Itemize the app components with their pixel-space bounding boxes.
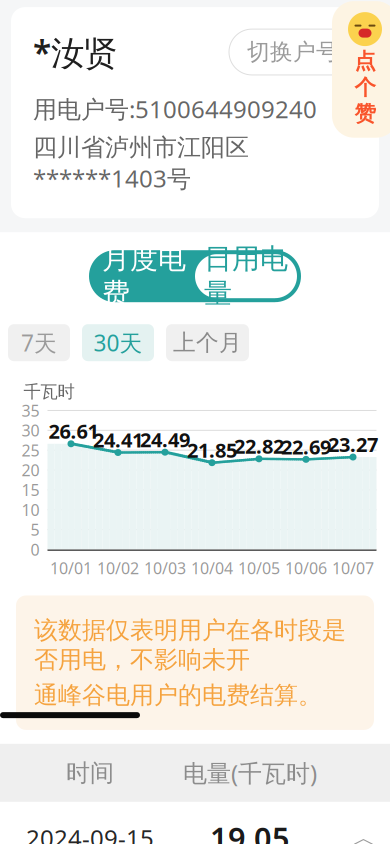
- staticText: 30: [21, 420, 39, 441]
- staticText: 切换户号: [247, 38, 339, 66]
- staticText: 10/03: [144, 557, 186, 579]
- staticText: 月度电费: [102, 242, 186, 311]
- staticText: 24.49: [140, 426, 190, 453]
- staticText: 26.61: [48, 418, 98, 444]
- staticText: 7天: [21, 328, 57, 358]
- staticText: 23.27: [328, 431, 378, 458]
- staticText: 21.85: [187, 437, 237, 463]
- staticText: *汝贤: [33, 30, 117, 74]
- staticText: 10/05: [238, 557, 280, 579]
- button[interactable]: 2024-09-15: [0, 802, 390, 844]
- staticText: 30天: [93, 328, 142, 358]
- button[interactable]: 上个月: [166, 324, 249, 361]
- staticText: 0: [30, 539, 39, 560]
- button[interactable]: 点个赞: [332, 1, 390, 138]
- staticText: 用电户号:5100644909240: [33, 93, 317, 125]
- staticText: 四川省泸州市江阳区******1403号: [33, 133, 249, 194]
- button[interactable]: 30天: [82, 324, 154, 361]
- staticText: 2024-09-15: [26, 822, 154, 844]
- staticText: 20: [21, 459, 39, 481]
- button[interactable]: 切换户号: [229, 29, 357, 75]
- button[interactable]: 月度电费: [93, 254, 195, 298]
- staticText: 10/01: [50, 557, 92, 579]
- staticText: 10/07: [332, 557, 374, 579]
- staticText: 35: [21, 400, 39, 421]
- staticText: 5: [30, 519, 39, 540]
- staticText: 上个月: [173, 329, 242, 356]
- button[interactable]: 7天: [8, 324, 70, 361]
- staticText: 10/06: [285, 557, 327, 579]
- staticText: 22.82: [234, 433, 284, 459]
- staticText: 日用电量: [204, 242, 288, 311]
- staticText: 15: [21, 479, 39, 500]
- staticText: 千瓦时: [23, 381, 74, 402]
- staticText: 10/02: [97, 557, 139, 579]
- staticText: 电量(千瓦时): [183, 757, 317, 789]
- staticText: 22.69: [281, 433, 331, 460]
- staticText: 19.05: [210, 817, 290, 844]
- staticText: 该数据仅表明用户在各时段是否用电，不影响未开: [34, 615, 346, 674]
- staticText: 通峰谷电用户的电费结算。: [34, 680, 322, 710]
- staticText: 25: [21, 439, 39, 461]
- staticText: 点个赞: [354, 48, 375, 127]
- staticText: 24.41: [93, 426, 143, 453]
- staticText: 10/04: [191, 557, 233, 579]
- staticText: 时间: [66, 758, 114, 788]
- button[interactable]: 日用电量: [195, 254, 297, 298]
- staticText: 10: [21, 499, 39, 520]
- staticText: ︿: [353, 824, 376, 844]
